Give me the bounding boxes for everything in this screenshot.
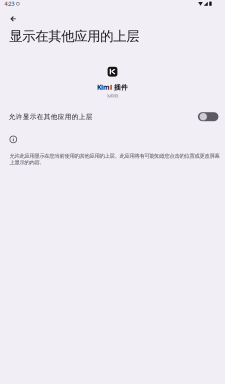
staticText: 允许此应用显示在您当前使用的其他应用的上层。此应用将有可能知道您点击的位置或更改… xyxy=(9,153,219,166)
staticText: 0y联联 xyxy=(106,93,118,98)
staticText: 显示在其他应用的上层 xyxy=(9,28,139,45)
button[interactable]: Back xyxy=(6,12,20,26)
staticText: 4:23 xyxy=(4,0,14,7)
staticText: 允许显示在其他应用的上层 xyxy=(9,113,93,121)
staticText: Kimi 插件 xyxy=(97,83,128,92)
button[interactable]: 允许显示在其他应用的上层 xyxy=(0,109,225,125)
